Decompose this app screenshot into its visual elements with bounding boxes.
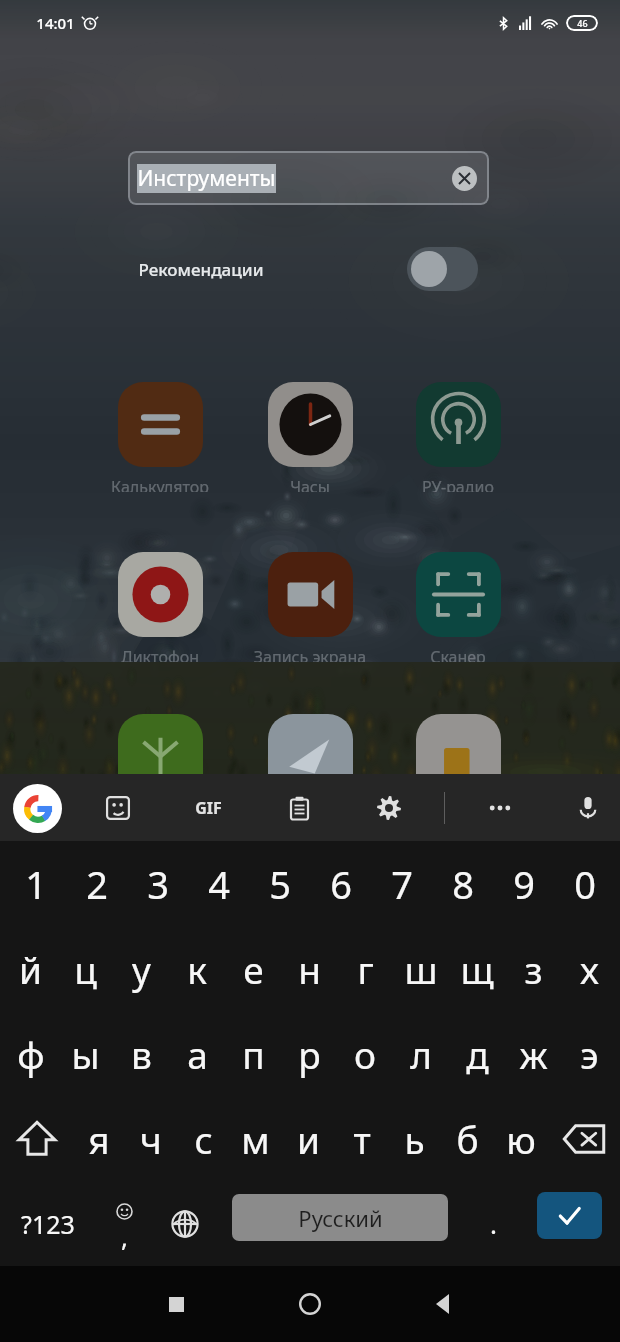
staticText: 3 [147,858,169,910]
staticText: ?123 [21,1207,75,1241]
staticText: Сканер [383,646,533,662]
button[interactable]: р [281,1011,337,1096]
button[interactable]: а [169,1011,225,1096]
button[interactable]: ь [388,1096,441,1181]
button[interactable]: м [229,1096,282,1181]
staticText: 4 [208,858,230,910]
staticText: Запись экрана [235,646,385,662]
button[interactable]: Clipboard [273,782,325,834]
button[interactable]: 4 [188,841,249,926]
button[interactable]: Emoji [94,1181,154,1266]
button[interactable] [85,714,235,799]
button[interactable]: ю [494,1096,547,1181]
button[interactable]: п [225,1011,281,1096]
staticText: ы [71,1029,100,1079]
button[interactable]: 3 [127,841,188,926]
button[interactable]: 8 [432,841,493,926]
button[interactable]: е [225,926,281,1011]
staticText: Русский [298,1203,383,1233]
button[interactable]: Часы [235,382,385,492]
button[interactable]: ч [125,1096,177,1181]
staticText: щ [460,944,494,994]
staticText: д [466,1029,489,1079]
button[interactable]: к [169,926,225,1011]
button[interactable]: ф [3,1011,58,1096]
button[interactable]: 5 [249,841,310,926]
staticText: Часы [235,476,385,492]
button[interactable]: Recents [139,1267,213,1341]
staticText: е [243,944,264,994]
button[interactable]: 7 [371,841,432,926]
button[interactable]: . [465,1181,521,1266]
button[interactable]: Инструменты [128,151,489,205]
button[interactable]: 1 [5,841,66,926]
button[interactable]: Settings [363,782,415,834]
button[interactable]: Enter [537,1192,602,1239]
button[interactable]: я [73,1096,125,1181]
button[interactable]: т [335,1096,388,1181]
button[interactable]: э [561,1011,617,1096]
button[interactable]: Google [11,782,63,834]
button[interactable] [235,714,385,799]
button[interactable]: л [393,1011,449,1096]
button[interactable]: Backspace [547,1096,620,1181]
button[interactable]: Shift [0,1096,73,1181]
staticText: ш [404,944,438,994]
staticText: ж [519,1029,548,1079]
button[interactable]: с [177,1096,229,1181]
button[interactable]: г [337,926,393,1011]
button[interactable] [383,714,533,799]
staticText: б [456,1114,479,1164]
staticText: л [410,1029,432,1079]
button[interactable]: н [281,926,337,1011]
button[interactable]: й [3,926,58,1011]
button[interactable]: о [337,1011,393,1096]
staticText: 0 [574,858,596,910]
button[interactable]: Voice input [562,782,614,834]
button[interactable]: Рекомендации [138,245,478,293]
button[interactable]: Clear [447,161,481,195]
staticText: с [194,1114,213,1164]
button[interactable]: у [113,926,169,1011]
button[interactable]: з [505,926,561,1011]
staticText: р [298,1029,321,1079]
staticText: ф [17,1029,45,1079]
staticText: ц [74,944,97,994]
button[interactable]: Home [273,1267,347,1341]
button[interactable]: 6 [310,841,371,926]
button[interactable]: в [113,1011,169,1096]
staticText: 7 [391,858,413,910]
button[interactable]: Русский [232,1194,448,1241]
staticText: т [353,1114,371,1164]
button[interactable]: Диктофон [85,552,235,662]
button[interactable]: 0 [554,841,615,926]
button[interactable]: Stickers [92,782,144,834]
button[interactable]: РУ-радио [383,382,533,492]
staticText: GIF [195,797,222,819]
staticText: я [88,1114,110,1164]
staticText: м [241,1114,270,1164]
button[interactable]: 2 [66,841,127,926]
button[interactable]: ж [505,1011,561,1096]
button[interactable]: ц [58,926,113,1011]
button[interactable]: ?123 [8,1181,88,1266]
button[interactable]: д [449,1011,505,1096]
staticText: ь [404,1114,425,1164]
button[interactable]: Запись экрана [235,552,385,662]
staticText: з [524,944,543,994]
button[interactable]: ш [393,926,449,1011]
button[interactable]: б [441,1096,494,1181]
button[interactable]: More [474,782,526,834]
button[interactable]: и [282,1096,335,1181]
staticText: а [187,1029,208,1079]
button[interactable]: Language [157,1181,213,1266]
button[interactable]: щ [449,926,505,1011]
button[interactable]: Сканер [383,552,533,662]
button[interactable]: 9 [493,841,554,926]
staticText: 1 [25,858,47,910]
button[interactable]: Back [407,1267,481,1341]
button[interactable]: Калькулятор [85,382,235,492]
button[interactable]: х [561,926,617,1011]
button[interactable]: GIF [182,782,234,834]
button[interactable]: ы [58,1011,113,1096]
